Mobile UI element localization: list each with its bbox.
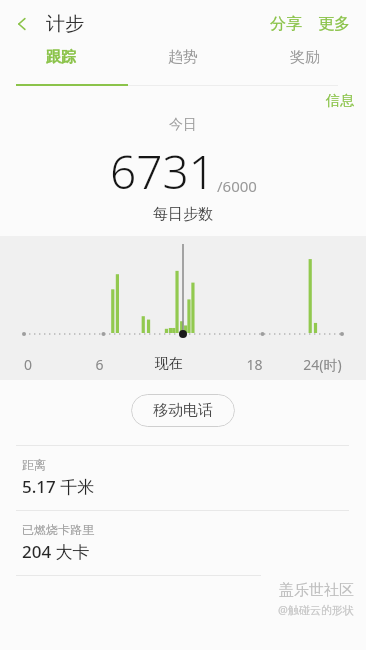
staticText: 204 大卡 xyxy=(22,540,90,563)
staticText: 计步 xyxy=(46,12,84,36)
button[interactable]: 已燃烧卡路里 xyxy=(0,511,366,575)
button[interactable]: 更多 xyxy=(310,8,358,40)
button[interactable]: 奖励 xyxy=(244,48,366,67)
staticText: 已燃烧卡路里 xyxy=(22,522,94,537)
staticText: 移动电话 xyxy=(153,401,213,420)
staticText: 18 xyxy=(246,355,263,374)
button[interactable]: 趋势 xyxy=(122,48,244,67)
staticText: 距离 xyxy=(22,457,46,472)
staticText: 今日 xyxy=(169,116,197,134)
staticText: 奖励 xyxy=(290,48,320,67)
button[interactable]: 距离 xyxy=(0,446,366,510)
button[interactable]: Back xyxy=(0,16,38,32)
staticText: @触碰云的形状 xyxy=(278,602,354,617)
button[interactable]: 移动电话 xyxy=(131,394,235,427)
staticText: 信息 xyxy=(326,92,354,110)
staticText: 6 xyxy=(95,355,104,374)
button[interactable]: 分享 xyxy=(262,8,310,40)
staticText: 分享 xyxy=(270,14,302,34)
staticText: 6731 xyxy=(110,140,216,203)
staticText: 5.17 千米 xyxy=(22,475,95,498)
staticText: 趋势 xyxy=(168,48,198,67)
staticText: /6000 xyxy=(217,176,257,196)
staticText: 现在 xyxy=(155,355,183,373)
staticText: 24(时) xyxy=(303,355,342,374)
staticText: 跟踪 xyxy=(46,48,76,67)
staticText: 更多 xyxy=(318,14,350,34)
staticText: 盖乐世社区 xyxy=(279,581,354,600)
button[interactable]: 跟踪 xyxy=(0,48,122,67)
button[interactable]: 信息 xyxy=(314,88,366,114)
staticText: 每日步数 xyxy=(153,205,213,224)
